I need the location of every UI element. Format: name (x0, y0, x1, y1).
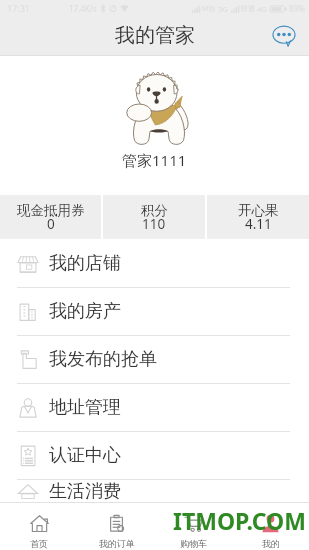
staticText: 积分 (141, 202, 168, 219)
staticText: 现金抵用券 (17, 202, 85, 219)
staticText: ITMOP.COM (173, 505, 306, 536)
button[interactable]: 我的房产 (0, 288, 309, 335)
staticText: 生活消费 (49, 480, 121, 501)
button[interactable]: Messages (272, 25, 296, 47)
staticText: 4.11 (245, 215, 272, 233)
staticText: 开心果 (238, 202, 279, 219)
staticText: 购物车 (180, 538, 207, 549)
staticText: 首页 (30, 538, 48, 549)
staticText: 110 (142, 215, 166, 233)
staticText: 地址管理 (49, 396, 121, 419)
staticText: 89% (289, 3, 305, 14)
button[interactable]: 我的店铺 (0, 240, 309, 287)
staticText: 我的店铺 (49, 252, 121, 275)
staticText: 0 (47, 215, 55, 233)
staticText: 我的管家 (115, 23, 195, 48)
button[interactable]: 首页 (0, 503, 78, 550)
button[interactable]: 现金抵用券 (0, 195, 101, 239)
button[interactable]: 积分 (103, 195, 205, 239)
staticText: 管家1111 (122, 150, 187, 170)
staticText: 我的 (262, 538, 280, 549)
button[interactable]: 认证中心 (0, 432, 309, 479)
staticText: 我的房产 (49, 300, 121, 323)
staticText: 17.4K/s (69, 3, 97, 14)
button[interactable]: 我的订单 (78, 503, 155, 550)
staticText: 我发布的抢单 (49, 348, 157, 371)
button[interactable]: 我的 (232, 503, 309, 550)
button[interactable]: 地址管理 (0, 384, 309, 431)
button[interactable]: 购物车 (155, 503, 232, 550)
staticText: 3G (218, 4, 228, 14)
button[interactable]: 生活消费 (0, 480, 309, 501)
staticText: 认证中心 (49, 444, 121, 467)
button[interactable]: 开心果 (207, 195, 309, 239)
staticText: 联通 (241, 4, 255, 13)
staticText: 17:31 (7, 2, 31, 14)
staticText: 4G (257, 4, 267, 14)
staticText: 我的订单 (99, 538, 135, 549)
staticText: M动 (202, 4, 216, 14)
button[interactable]: 我发布的抢单 (0, 336, 309, 383)
